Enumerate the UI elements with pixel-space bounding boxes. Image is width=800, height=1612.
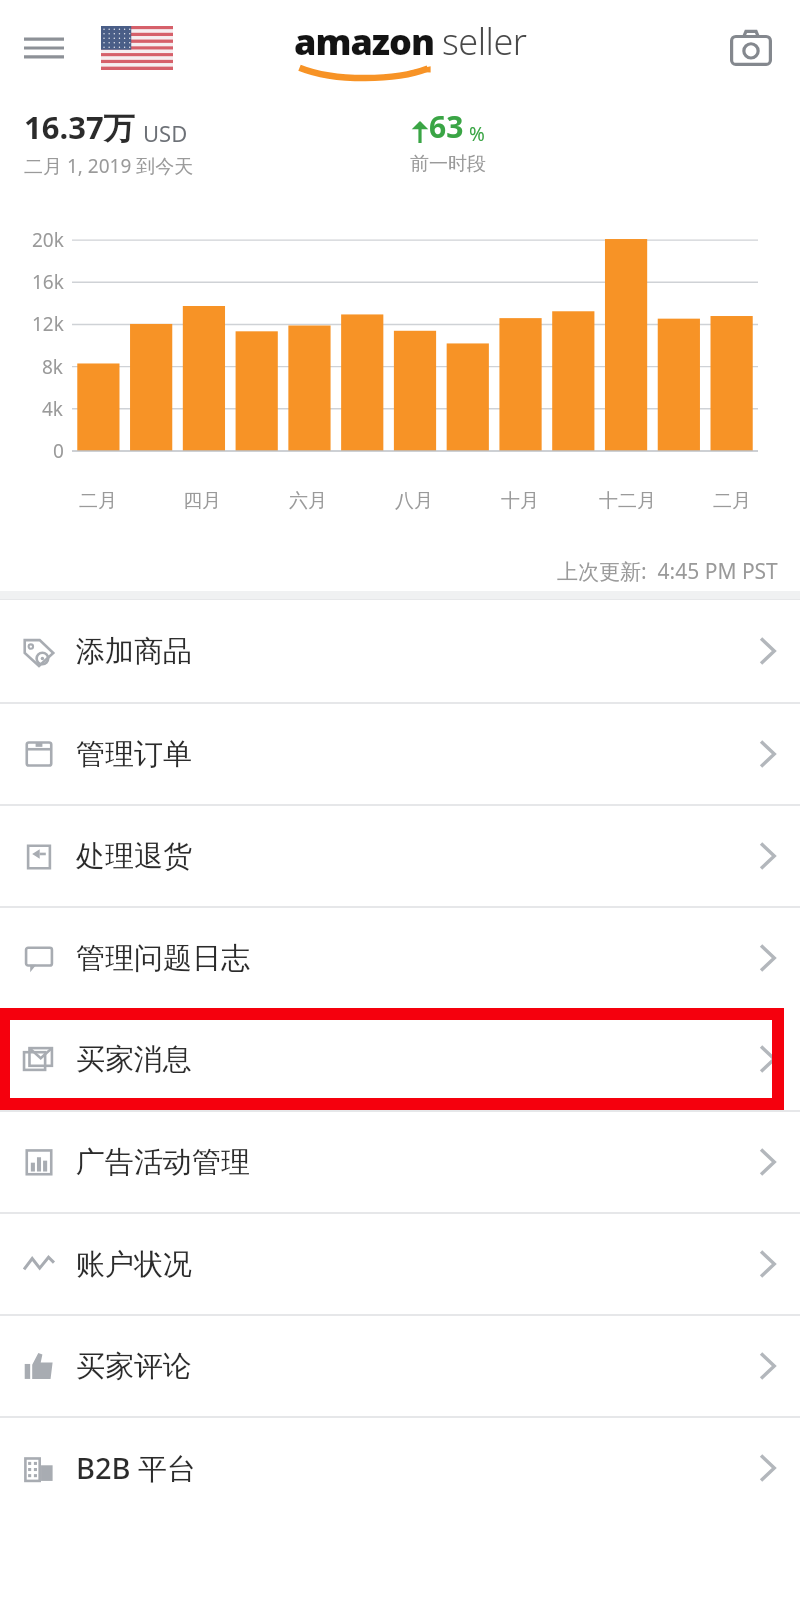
button[interactable]: B2B 平台	[0, 1418, 800, 1518]
button[interactable]: 添加商品	[0, 600, 800, 702]
staticText: 16k	[32, 269, 64, 295]
staticText: B2B 平台	[76, 1448, 197, 1488]
staticText: 广告活动管理	[76, 1144, 250, 1181]
button[interactable]: 买家消息	[0, 1008, 800, 1110]
staticText: 处理退货	[76, 838, 192, 875]
staticText: 十二月	[599, 489, 652, 513]
staticText: 八月	[395, 489, 433, 513]
staticText: 二月 1, 2019 到今天	[24, 153, 194, 179]
staticText: 前一时段	[410, 152, 486, 176]
staticText: 16.37万	[24, 106, 135, 148]
button[interactable]: Scan with camera	[720, 17, 782, 79]
button[interactable]: 管理订单	[0, 704, 800, 804]
staticText: 63	[429, 106, 464, 147]
staticText: 账户状况	[76, 1246, 192, 1283]
staticText: 二月	[79, 489, 117, 513]
staticText: 买家评论	[76, 1348, 192, 1385]
button[interactable]: Menu	[14, 18, 74, 78]
button[interactable]: Marketplace United States	[100, 25, 174, 71]
staticText: 二月	[713, 489, 751, 513]
staticText: %	[469, 121, 485, 147]
staticText: 20k	[32, 227, 64, 253]
button[interactable]: 买家评论	[0, 1316, 800, 1416]
staticText: seller	[442, 17, 527, 66]
staticText: amazon	[294, 17, 435, 66]
staticText: 管理订单	[76, 736, 192, 773]
button[interactable]: 广告活动管理	[0, 1112, 800, 1212]
staticText: 六月	[289, 489, 327, 513]
staticText: 上次更新: 4:45 PM PST	[557, 557, 778, 586]
staticText: 0	[53, 438, 64, 464]
button[interactable]: 账户状况	[0, 1214, 800, 1314]
button[interactable]: 管理问题日志	[0, 908, 800, 1008]
staticText: 4k	[42, 396, 64, 422]
staticText: 添加商品	[76, 633, 192, 670]
staticText: 12k	[32, 311, 64, 337]
staticText: 8k	[42, 354, 64, 380]
staticText: 四月	[183, 489, 221, 513]
staticText: 管理问题日志	[76, 940, 250, 977]
staticText: 买家消息	[76, 1041, 192, 1078]
button[interactable]: 处理退货	[0, 806, 800, 906]
staticText: 十月	[501, 489, 539, 513]
staticText: USD	[143, 118, 188, 148]
